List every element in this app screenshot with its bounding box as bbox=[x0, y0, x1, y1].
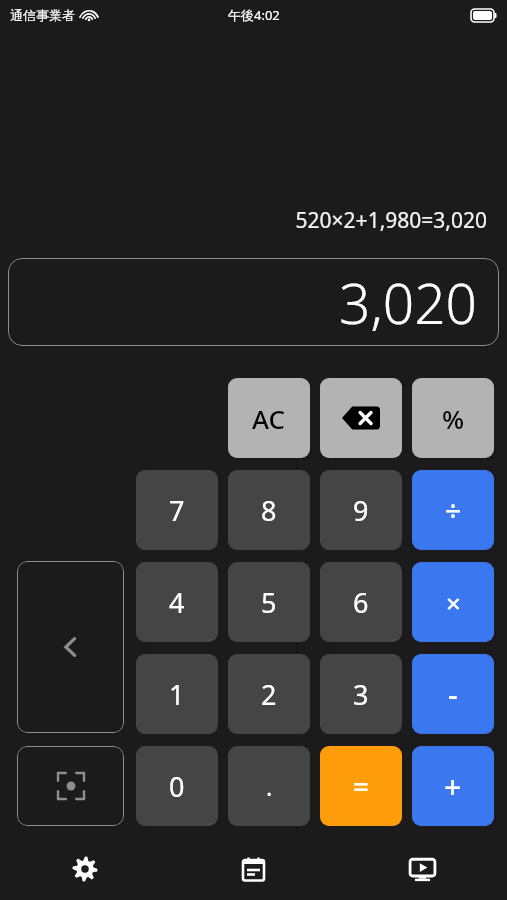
button[interactable]: - bbox=[412, 654, 494, 734]
button[interactable]: Video bbox=[338, 838, 507, 900]
button[interactable]: 6 bbox=[320, 562, 402, 642]
staticText: 9 bbox=[353, 492, 369, 529]
staticText: 4 bbox=[169, 584, 185, 621]
button[interactable]: Settings bbox=[0, 838, 169, 900]
button[interactable]: Scan bbox=[17, 746, 124, 826]
staticText: × bbox=[446, 585, 461, 620]
staticText: % bbox=[442, 401, 465, 436]
button[interactable]: 3,020 bbox=[8, 258, 499, 346]
button[interactable]: 1 bbox=[136, 654, 218, 734]
staticText: 2 bbox=[261, 676, 277, 713]
staticText: 5 bbox=[261, 584, 277, 621]
button[interactable]: History bbox=[169, 838, 338, 900]
staticText: 1 bbox=[169, 676, 185, 713]
button[interactable]: Back bbox=[17, 561, 124, 733]
staticText: 520×2+1,980=3,020 bbox=[295, 206, 487, 235]
staticText: 0 bbox=[169, 768, 185, 805]
staticText: - bbox=[448, 674, 458, 715]
staticText: 3,020 bbox=[339, 265, 477, 340]
button[interactable]: 7 bbox=[136, 470, 218, 550]
staticText: 3 bbox=[353, 676, 369, 713]
staticText: = bbox=[353, 767, 370, 805]
button[interactable]: 2 bbox=[228, 654, 310, 734]
button[interactable]: 3 bbox=[320, 654, 402, 734]
staticText: 7 bbox=[169, 492, 185, 529]
button[interactable]: % bbox=[412, 378, 494, 458]
staticText: + bbox=[444, 766, 462, 807]
button[interactable]: AC bbox=[228, 378, 310, 458]
button[interactable]: 5 bbox=[228, 562, 310, 642]
staticText: ÷ bbox=[445, 491, 462, 529]
staticText: 通信事業者 bbox=[10, 7, 75, 23]
button[interactable]: + bbox=[412, 746, 494, 826]
button[interactable]: 4 bbox=[136, 562, 218, 642]
staticText: AC bbox=[252, 401, 286, 436]
button[interactable]: . bbox=[228, 746, 310, 826]
button[interactable]: = bbox=[320, 746, 402, 826]
staticText: . bbox=[266, 770, 273, 803]
button[interactable]: 9 bbox=[320, 470, 402, 550]
button[interactable]: 8 bbox=[228, 470, 310, 550]
button[interactable]: Backspace bbox=[320, 378, 402, 458]
button[interactable]: ÷ bbox=[412, 470, 494, 550]
button[interactable]: 0 bbox=[136, 746, 218, 826]
staticText: 6 bbox=[353, 584, 369, 621]
staticText: 午後4:02 bbox=[228, 6, 280, 24]
button[interactable]: × bbox=[412, 562, 494, 642]
staticText: 8 bbox=[261, 492, 277, 529]
